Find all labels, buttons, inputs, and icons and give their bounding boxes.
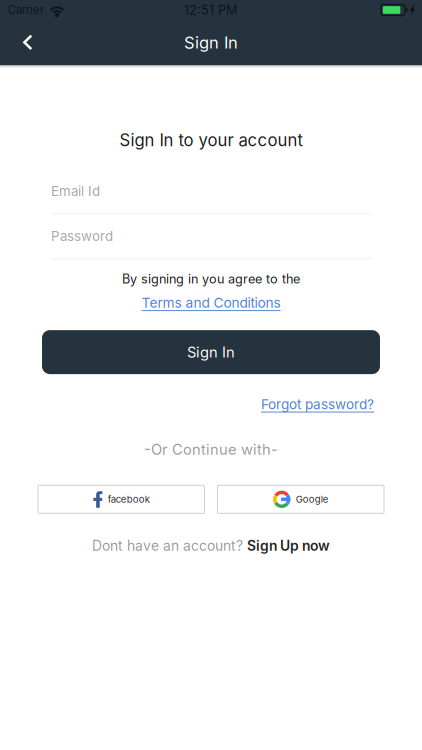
staticText: Sign Up now	[247, 537, 330, 554]
button[interactable]: Sign Up now	[247, 537, 330, 554]
staticText: Terms and Conditions	[141, 294, 280, 311]
button[interactable]: Terms and Conditions	[141, 286, 280, 311]
button[interactable]: Sign In	[42, 330, 380, 374]
button[interactable]: facebook	[38, 485, 204, 513]
staticText: -Or Continue with-	[144, 441, 278, 458]
staticText: Sign In	[184, 32, 238, 52]
staticText: facebook	[108, 493, 150, 505]
staticText: Forgot password?	[261, 396, 374, 413]
staticText: By signing in you agree to the	[122, 271, 300, 286]
staticText: Password	[51, 228, 113, 244]
button[interactable]: Forgot password?	[261, 396, 374, 413]
staticText: Carrier	[8, 3, 44, 17]
button[interactable]: Back	[0, 21, 46, 64]
staticText: Google	[296, 493, 329, 505]
staticText: Dont have an account?	[92, 537, 243, 554]
staticText: Email Id	[51, 183, 100, 199]
staticText: Sign In	[187, 343, 235, 361]
button[interactable]: Google	[217, 485, 384, 513]
staticText: Sign In to your account	[119, 130, 302, 150]
staticText: 12:51 PM	[184, 2, 238, 18]
